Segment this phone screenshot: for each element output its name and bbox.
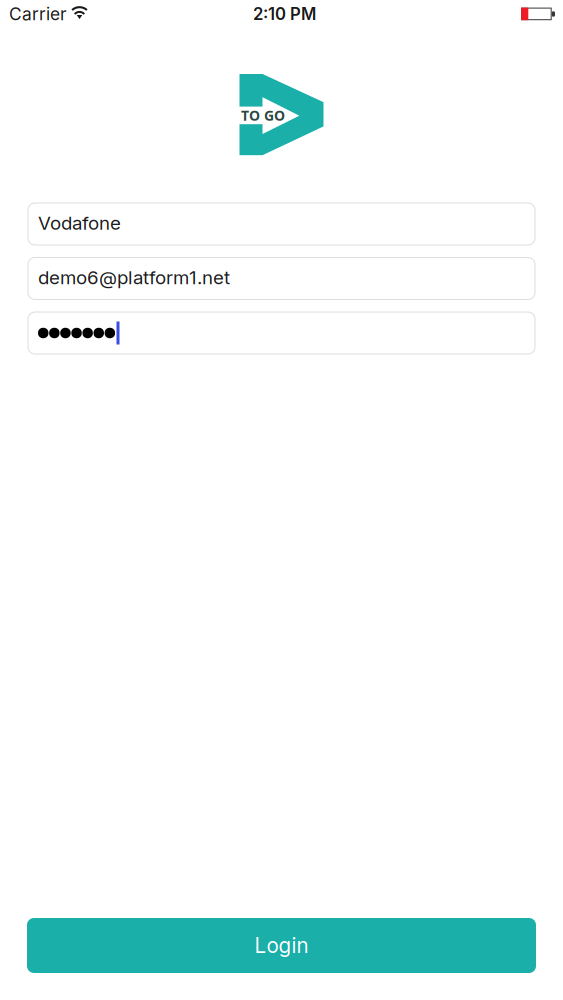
button[interactable]: Vodafone: [28, 203, 535, 245]
staticText: TO GO: [241, 106, 285, 125]
staticText: Carrier: [9, 3, 67, 24]
staticText: Login: [254, 933, 308, 958]
button[interactable]: [28, 312, 535, 354]
button[interactable]: demo6@platform1.net: [28, 257, 535, 299]
staticText: 2:10 PM: [253, 4, 316, 24]
button[interactable]: Login: [27, 918, 536, 973]
staticText: Vodafone: [38, 212, 121, 234]
staticText: demo6@platform1.net: [38, 266, 230, 289]
